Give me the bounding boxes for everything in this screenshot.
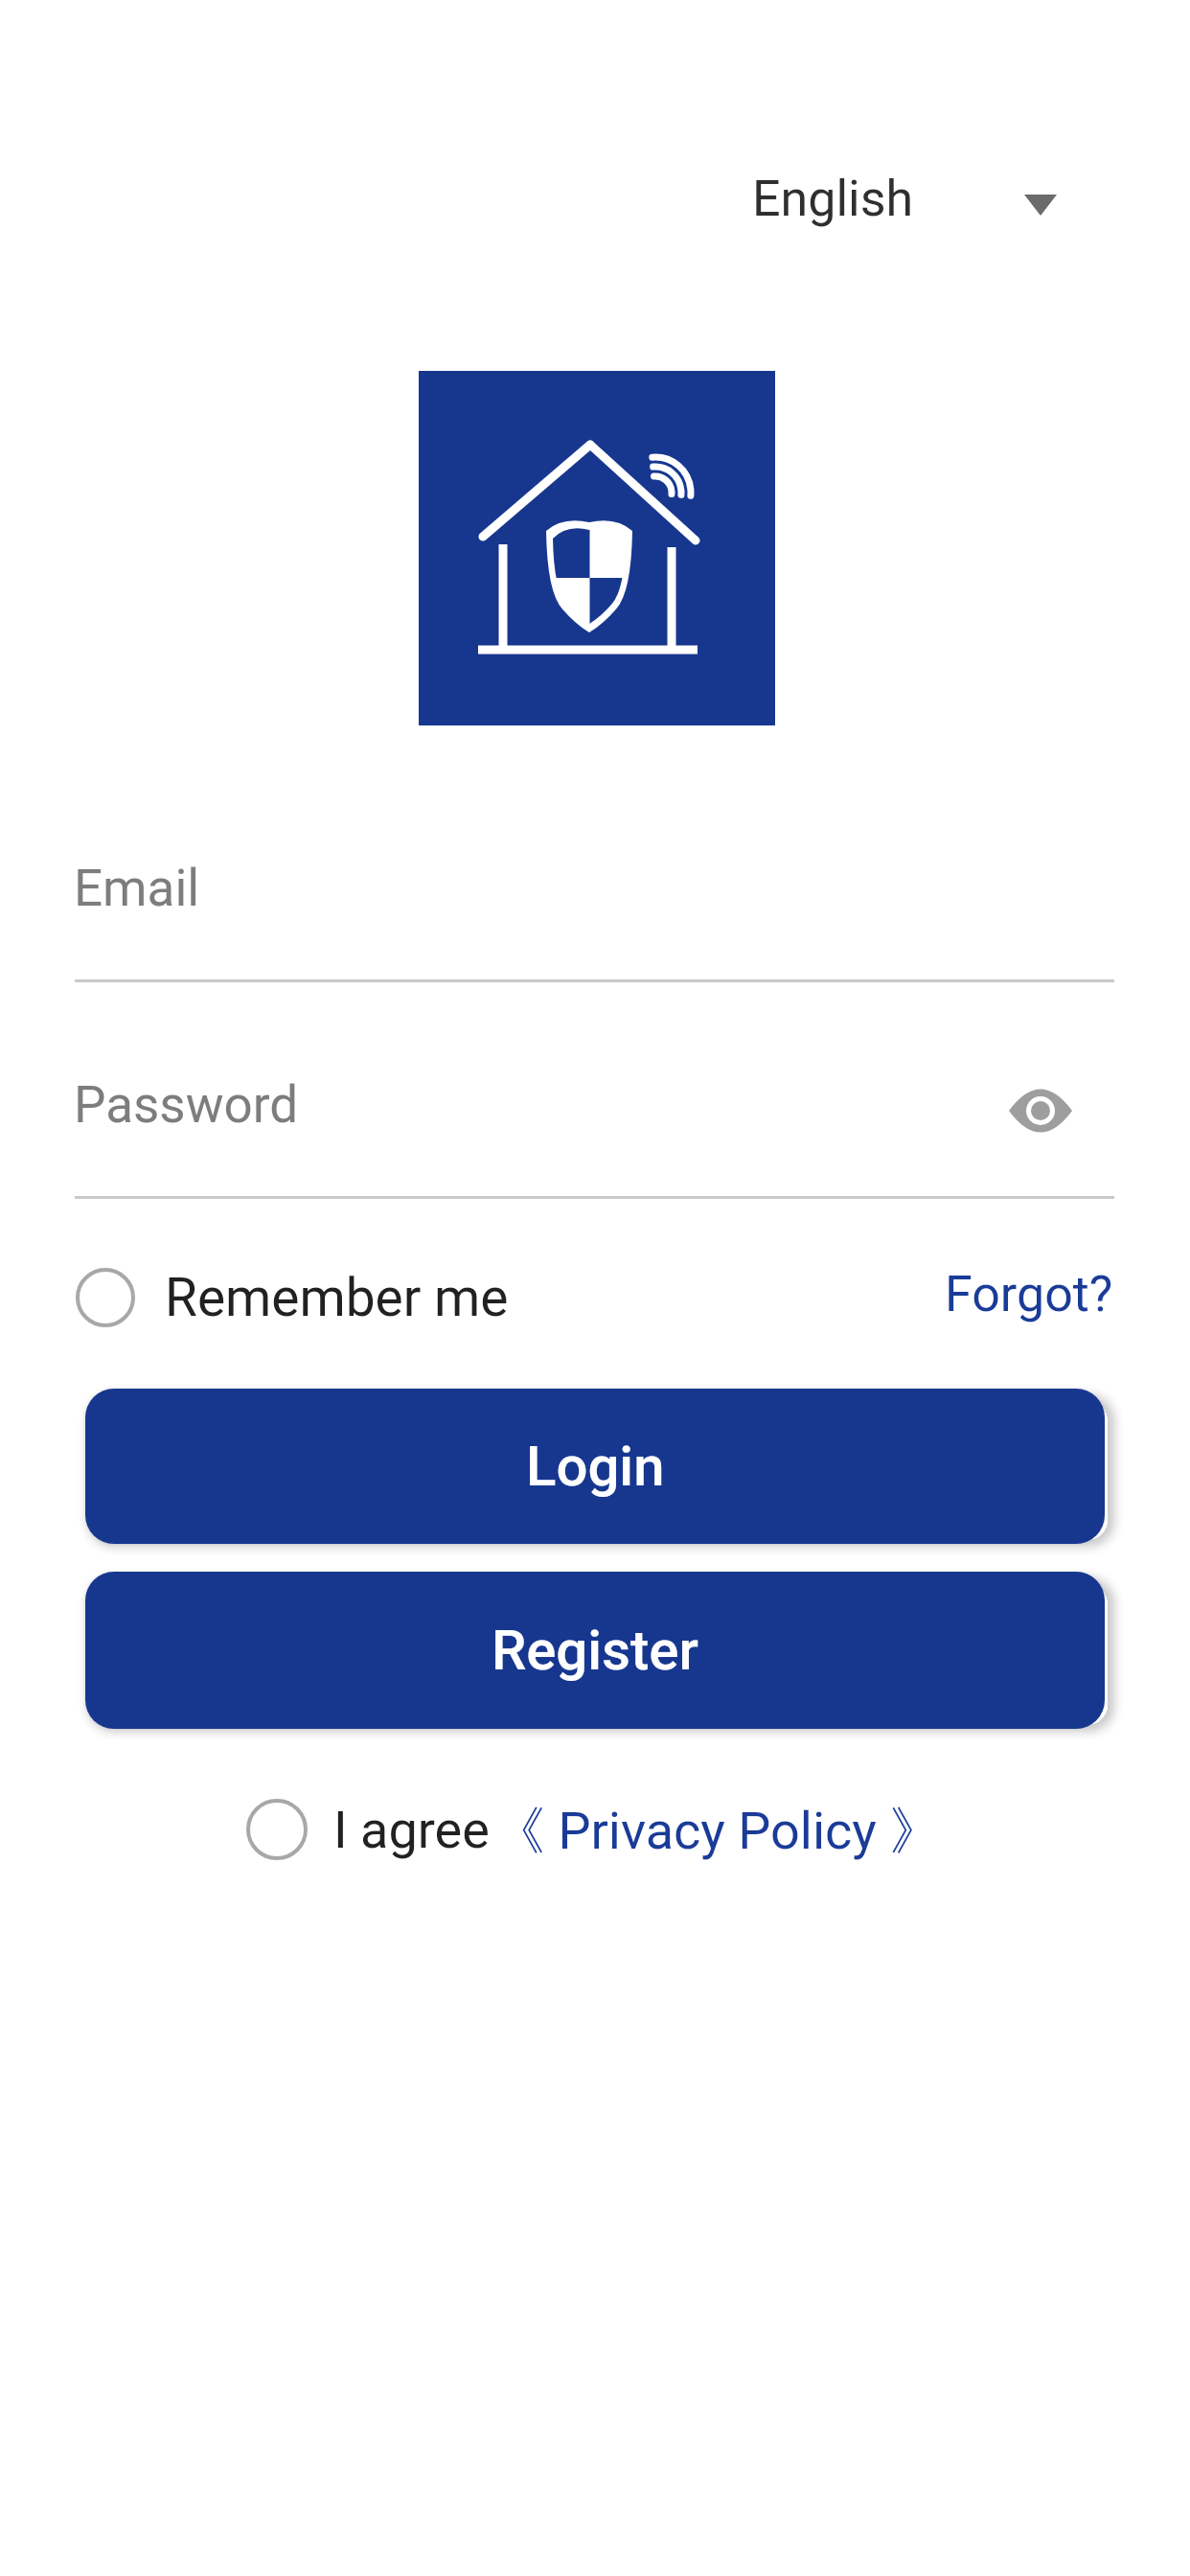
button[interactable] [1009,1089,1072,1133]
button[interactable]: Register [85,1572,1105,1729]
button[interactable]: I agree [246,1799,490,1860]
staticText: Register [492,1618,698,1683]
staticText: Remember me [165,1267,509,1328]
staticText: Login [526,1434,665,1499]
staticText: English [752,170,914,228]
staticText: I agree [333,1800,490,1860]
button[interactable]: 《 Privacy Policy 》 [493,1799,942,1864]
staticText: Email [74,859,200,918]
staticText: Password [74,1075,299,1135]
button[interactable]: Remember me [76,1267,509,1328]
button[interactable]: Login [85,1389,1105,1544]
button[interactable]: English [752,153,1190,212]
button[interactable]: Forgot? [945,1265,1113,1323]
